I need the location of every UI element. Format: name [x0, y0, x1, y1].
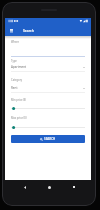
staticText: Rent [11, 86, 18, 90]
button[interactable]: Recent apps [69, 182, 79, 192]
staticText: Type [11, 59, 17, 63]
button[interactable]: Apartment [11, 65, 85, 72]
button[interactable]: Rent [11, 86, 85, 93]
button[interactable] [11, 125, 85, 130]
button[interactable]: SEARCH [11, 135, 85, 143]
button[interactable]: Open navigation menu [5, 24, 17, 36]
staticText: Category [11, 78, 23, 82]
staticText: Max price ($) [11, 116, 27, 120]
staticText: SEARCH [44, 137, 56, 141]
staticText: Min price ($) [11, 98, 27, 102]
staticText: Where [11, 40, 19, 44]
staticText: Apartment [11, 65, 27, 69]
staticText: Search [23, 28, 34, 33]
button[interactable]: Home [44, 182, 54, 192]
button[interactable] [11, 106, 85, 111]
button[interactable]: Back [20, 182, 30, 192]
